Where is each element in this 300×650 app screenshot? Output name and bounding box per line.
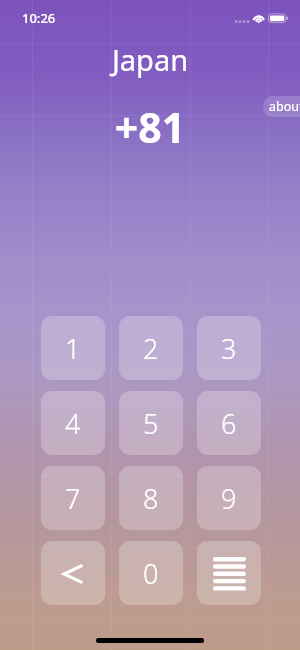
staticText: 1 bbox=[65, 330, 81, 367]
staticText: 9 bbox=[221, 480, 237, 517]
staticText: +81 bbox=[0, 99, 300, 155]
staticText: 7 bbox=[65, 480, 81, 517]
button[interactable]: 0 bbox=[119, 541, 183, 605]
button[interactable]: 9 bbox=[197, 466, 261, 530]
button[interactable]: 7 bbox=[41, 466, 105, 530]
button[interactable]: 8 bbox=[119, 466, 183, 530]
staticText: 3 bbox=[221, 330, 237, 367]
staticText: 0 bbox=[143, 555, 159, 592]
staticText: 2 bbox=[143, 330, 159, 367]
button[interactable]: 4 bbox=[41, 391, 105, 455]
button[interactable]: Delete bbox=[41, 541, 105, 605]
staticText: Japan bbox=[0, 40, 300, 79]
staticText: 6 bbox=[221, 405, 237, 442]
staticText: about bbox=[269, 98, 300, 115]
button[interactable]: Contacts list bbox=[197, 541, 261, 605]
staticText: 10:26 bbox=[22, 9, 56, 27]
button[interactable]: 1 bbox=[41, 316, 105, 380]
button[interactable]: about bbox=[263, 96, 300, 117]
staticText: 5 bbox=[143, 405, 159, 442]
button[interactable]: 6 bbox=[197, 391, 261, 455]
button[interactable]: 2 bbox=[119, 316, 183, 380]
staticText: 8 bbox=[143, 480, 159, 517]
button[interactable]: 5 bbox=[119, 391, 183, 455]
staticText: 4 bbox=[65, 405, 81, 442]
button[interactable]: 3 bbox=[197, 316, 261, 380]
